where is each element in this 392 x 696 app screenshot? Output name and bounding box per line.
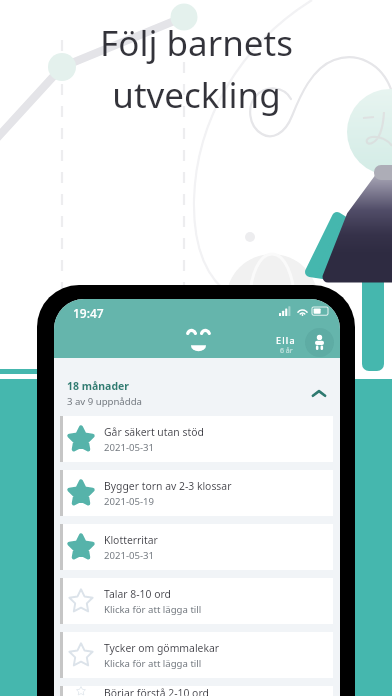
staticText: Följ barnets: [100, 19, 293, 67]
button[interactable]: Profile: [305, 328, 334, 357]
button[interactable]: Tycker om gömmalekar: [60, 632, 333, 678]
button[interactable]: Går säkert utan stöd: [60, 416, 333, 462]
staticText: Tycker om gömmalekar: [104, 641, 220, 655]
staticText: Går säkert utan stöd: [104, 425, 204, 439]
staticText: 2021-05-31: [104, 549, 155, 562]
button[interactable]: Klotterritar: [60, 524, 333, 570]
button[interactable]: Bygger torn av 2-3 klossar: [60, 470, 333, 516]
button[interactable]: Talar 8-10 ord: [60, 578, 333, 624]
staticText: Klicka för att lägga till: [104, 657, 202, 670]
staticText: Bygger torn av 2-3 klossar: [104, 479, 232, 493]
button[interactable]: 18 månader: [54, 376, 340, 411]
staticText: Ella: [276, 334, 296, 346]
button[interactable]: Börjar förstå 2-10 ord: [60, 686, 333, 696]
staticText: Talar 8-10 ord: [104, 587, 171, 601]
staticText: 18 månader: [67, 379, 129, 393]
staticText: utveckling: [112, 71, 281, 119]
staticText: Börjar förstå 2-10 ord: [104, 686, 209, 696]
staticText: 19:47: [73, 305, 104, 321]
staticText: 3 av 9 uppnådda: [67, 395, 142, 408]
staticText: Klotterritar: [104, 533, 158, 547]
staticText: 2021-05-31: [104, 441, 155, 454]
staticText: Klicka för att lägga till: [104, 603, 202, 616]
staticText: 6 år: [280, 346, 293, 356]
staticText: 2021-05-19: [104, 495, 155, 508]
